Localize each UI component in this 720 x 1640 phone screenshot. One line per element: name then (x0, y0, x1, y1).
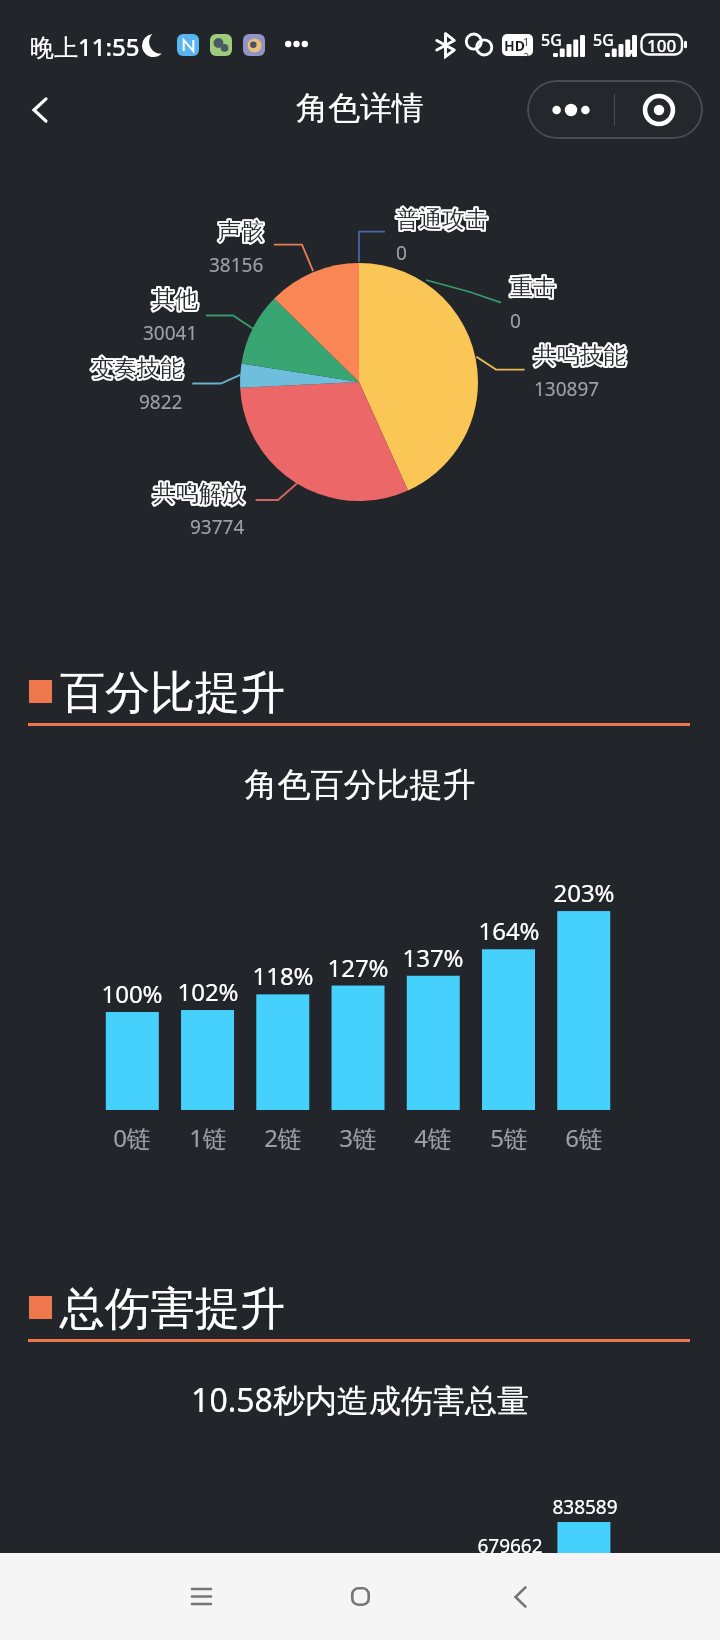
staticText: HD (504, 36, 525, 55)
button[interactable]: Home (320, 1553, 400, 1640)
staticText: 10.58秒内造成伤害总量 (0, 1378, 720, 1422)
staticText: 5链 (449, 1121, 569, 1154)
staticText: 127% (298, 951, 418, 984)
button[interactable]: More options (527, 80, 614, 139)
staticText: 0链 (72, 1121, 192, 1154)
staticText: 其他 (152, 285, 198, 314)
staticText: 100% (72, 977, 192, 1010)
staticText: 1 (523, 34, 530, 49)
staticText: 9822 (139, 389, 183, 415)
staticText: 5G (541, 29, 562, 51)
staticText: 共鸣技能 (534, 341, 626, 370)
staticText: 30041 (143, 320, 198, 346)
staticText: 普通攻击 (396, 205, 488, 234)
staticText: 声骸 (218, 217, 264, 246)
staticText: 0 (510, 308, 521, 334)
button[interactable]: Recent apps (161, 1553, 241, 1640)
staticText: 2 (523, 49, 530, 64)
staticText: 百分比提升 (60, 665, 285, 722)
staticText: 130897 (534, 376, 600, 402)
staticText: 1链 (148, 1121, 268, 1154)
staticText: 838589 (525, 1494, 645, 1520)
staticText: 重击 (510, 273, 556, 302)
staticText: 共鸣解放 (153, 479, 245, 508)
staticText: 100 (647, 34, 677, 55)
staticText: 38156 (209, 252, 264, 278)
staticText: 0 (396, 240, 407, 266)
staticText: 变奏技能 (91, 354, 183, 383)
staticText: 普通攻击 (396, 205, 488, 234)
button[interactable]: Back (12, 82, 68, 138)
button[interactable]: Close mini program (615, 80, 703, 139)
staticText: 679662 (450, 1533, 570, 1559)
staticText: 角色百分比提升 (0, 764, 720, 806)
staticText: 118% (223, 959, 343, 992)
staticText: 203% (524, 876, 644, 909)
staticText: 其他 (152, 285, 198, 314)
staticText: 3链 (298, 1121, 418, 1154)
staticText: 晚上11:55 (30, 30, 140, 63)
staticText: 角色详情 (0, 88, 720, 128)
staticText: 声骸 (218, 217, 264, 246)
staticText: 2链 (223, 1121, 343, 1154)
staticText: 4链 (373, 1121, 493, 1154)
staticText: 5G (593, 29, 614, 51)
staticText: 6链 (524, 1121, 644, 1154)
staticText: 总伤害提升 (60, 1281, 285, 1338)
staticText: 102% (148, 975, 268, 1008)
button[interactable]: Back (480, 1553, 560, 1640)
staticText: 重击 (510, 273, 556, 302)
staticText: 共鸣解放 (153, 479, 245, 508)
staticText: 变奏技能 (91, 354, 183, 383)
staticText: 93774 (190, 514, 245, 540)
staticText: 共鸣技能 (534, 341, 626, 370)
staticText: 164% (449, 914, 569, 947)
staticText: 137% (373, 941, 493, 974)
